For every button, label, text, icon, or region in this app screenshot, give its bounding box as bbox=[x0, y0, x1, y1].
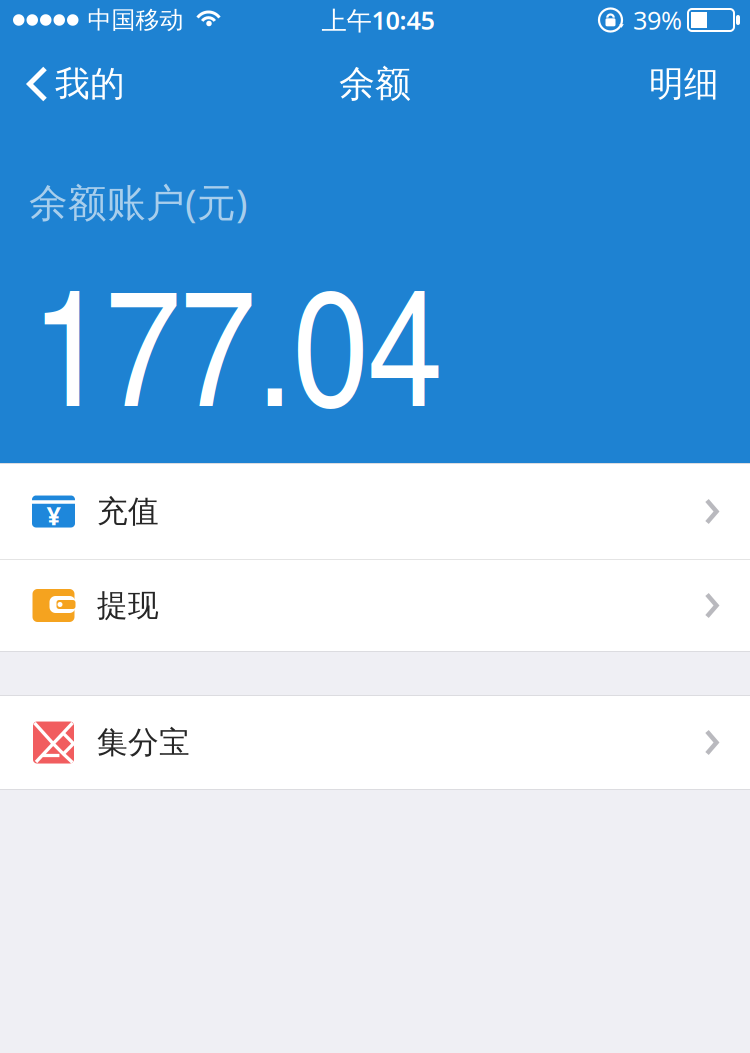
staticText: ¥ bbox=[46, 499, 60, 532]
button[interactable]: 我的 bbox=[0, 41, 125, 127]
button[interactable]: ¥ bbox=[0, 464, 750, 559]
staticText: 余额账户(元) bbox=[29, 176, 248, 227]
staticText: 上午10:45 bbox=[321, 3, 434, 37]
button[interactable]: 集分宝 bbox=[0, 696, 750, 789]
button[interactable]: 提现 bbox=[0, 560, 750, 651]
staticText: 177.04 bbox=[31, 227, 443, 452]
staticText: 中国移动 bbox=[87, 5, 183, 35]
staticText: 我的 bbox=[55, 63, 125, 105]
staticText: 39% bbox=[633, 3, 682, 37]
button[interactable]: 明细 bbox=[649, 41, 750, 127]
staticText: 明细 bbox=[649, 63, 719, 105]
staticText: 余额 bbox=[339, 62, 411, 106]
staticText: 提现 bbox=[97, 587, 159, 624]
staticText: 充值 bbox=[97, 493, 159, 530]
staticText: 集分宝 bbox=[97, 724, 190, 761]
